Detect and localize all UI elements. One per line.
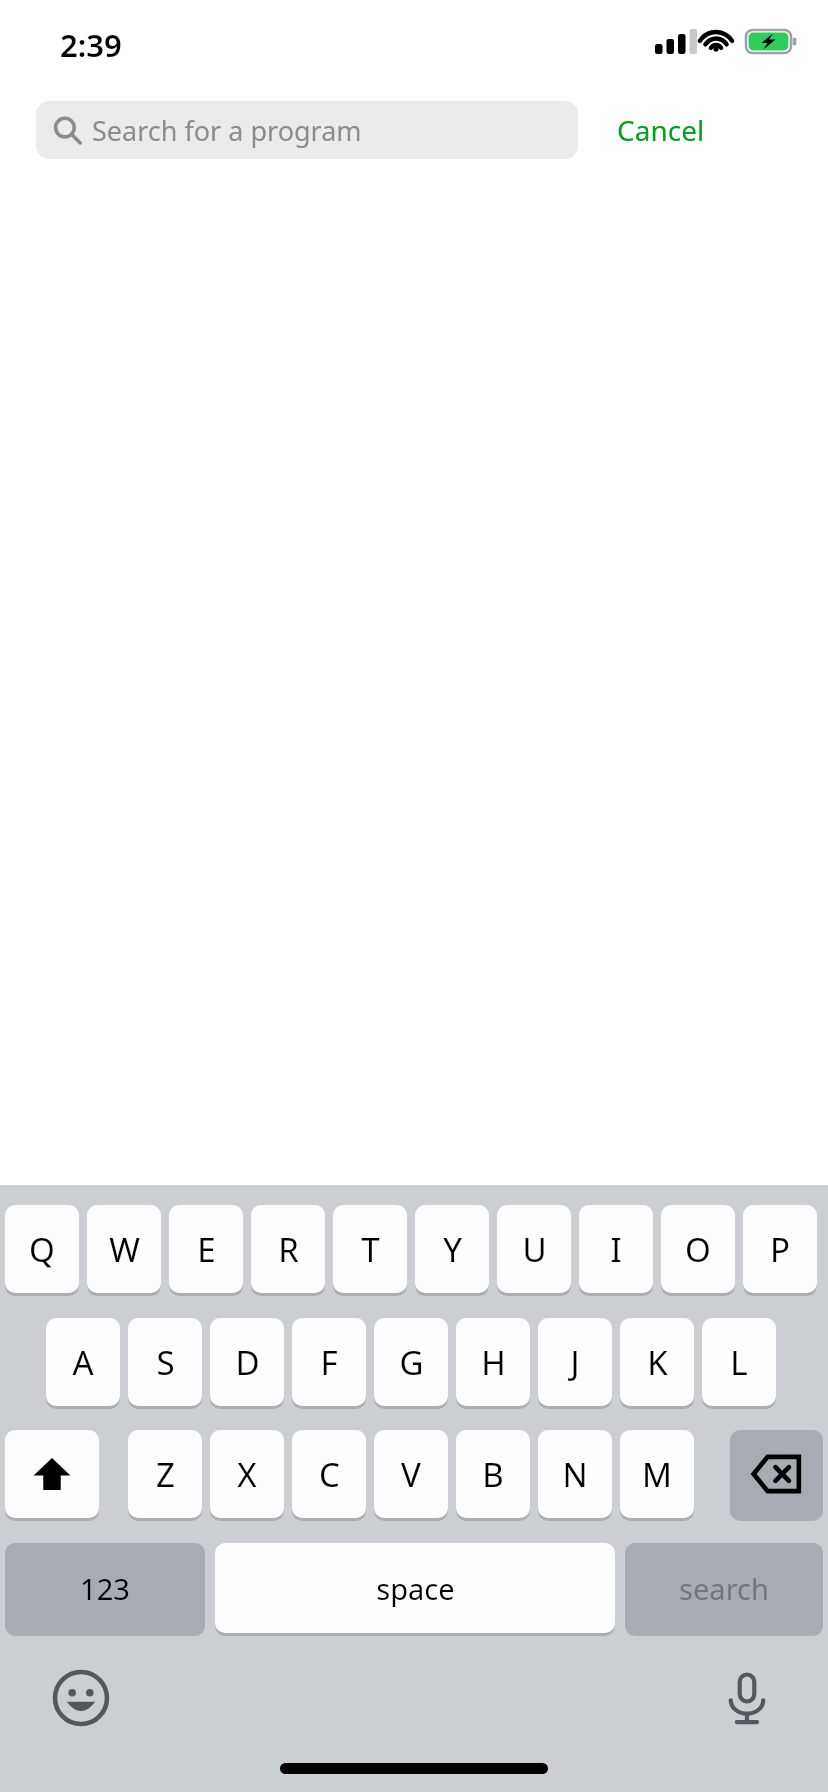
button[interactable]: S bbox=[128, 1318, 202, 1406]
staticText: J bbox=[570, 1340, 580, 1385]
staticText: F bbox=[320, 1340, 338, 1385]
button[interactable]: T bbox=[333, 1205, 407, 1293]
button[interactable]: O bbox=[661, 1205, 735, 1293]
staticText: search bbox=[679, 1569, 769, 1608]
staticText: M bbox=[642, 1452, 672, 1497]
staticText: Search for a program bbox=[92, 112, 362, 149]
button[interactable]: B bbox=[456, 1430, 530, 1518]
staticText: E bbox=[197, 1227, 216, 1272]
button[interactable]: Z bbox=[128, 1430, 202, 1518]
button[interactable]: G bbox=[374, 1318, 448, 1406]
button[interactable]: I bbox=[579, 1205, 653, 1293]
staticText: B bbox=[482, 1452, 504, 1497]
staticText: H bbox=[481, 1340, 506, 1385]
button[interactable]: M bbox=[620, 1430, 694, 1518]
button[interactable]: Q bbox=[5, 1205, 79, 1293]
button[interactable]: N bbox=[538, 1430, 612, 1518]
button[interactable]: Y bbox=[415, 1205, 489, 1293]
button[interactable]: space bbox=[215, 1543, 615, 1633]
staticText: R bbox=[278, 1227, 299, 1272]
staticText: I bbox=[610, 1227, 622, 1272]
staticText: O bbox=[685, 1227, 711, 1272]
button[interactable]: C bbox=[292, 1430, 366, 1518]
button[interactable]: Dictation bbox=[710, 1661, 784, 1735]
staticText: U bbox=[522, 1227, 547, 1272]
button[interactable]: Emoji keyboard bbox=[44, 1661, 118, 1735]
staticText: L bbox=[730, 1340, 748, 1385]
staticText: 2:39 bbox=[60, 24, 122, 66]
button[interactable]: Search for a program bbox=[36, 101, 578, 159]
staticText: Z bbox=[156, 1452, 175, 1497]
button[interactable]: D bbox=[210, 1318, 284, 1406]
button[interactable]: R bbox=[251, 1205, 325, 1293]
button[interactable]: Cancel bbox=[586, 101, 736, 159]
button[interactable]: X bbox=[210, 1430, 284, 1518]
button[interactable]: P bbox=[743, 1205, 817, 1293]
staticText: K bbox=[647, 1340, 668, 1385]
staticText: S bbox=[156, 1340, 175, 1385]
staticText: space bbox=[376, 1569, 455, 1608]
button[interactable]: H bbox=[456, 1318, 530, 1406]
button[interactable]: K bbox=[620, 1318, 694, 1406]
button[interactable]: Shift bbox=[5, 1430, 99, 1518]
staticText: W bbox=[109, 1227, 140, 1272]
staticText: Q bbox=[29, 1227, 55, 1272]
staticText: Cancel bbox=[617, 111, 705, 149]
staticText: P bbox=[770, 1227, 790, 1272]
button[interactable]: A bbox=[46, 1318, 120, 1406]
button[interactable]: 123 bbox=[5, 1543, 205, 1633]
staticText: N bbox=[562, 1452, 588, 1497]
staticText: Y bbox=[443, 1227, 462, 1272]
staticText: C bbox=[319, 1452, 340, 1497]
button[interactable]: J bbox=[538, 1318, 612, 1406]
button[interactable]: Backspace bbox=[730, 1430, 823, 1518]
button[interactable]: V bbox=[374, 1430, 448, 1518]
button[interactable]: L bbox=[702, 1318, 776, 1406]
button[interactable]: U bbox=[497, 1205, 571, 1293]
staticText: T bbox=[361, 1227, 380, 1272]
button[interactable]: W bbox=[87, 1205, 161, 1293]
staticText: A bbox=[72, 1340, 94, 1385]
button[interactable]: E bbox=[169, 1205, 243, 1293]
staticText: G bbox=[399, 1340, 424, 1385]
staticText: X bbox=[237, 1452, 257, 1497]
button[interactable]: F bbox=[292, 1318, 366, 1406]
staticText: D bbox=[235, 1340, 260, 1385]
staticText: 123 bbox=[80, 1569, 130, 1608]
staticText: V bbox=[401, 1452, 421, 1497]
button[interactable]: search bbox=[625, 1543, 823, 1633]
